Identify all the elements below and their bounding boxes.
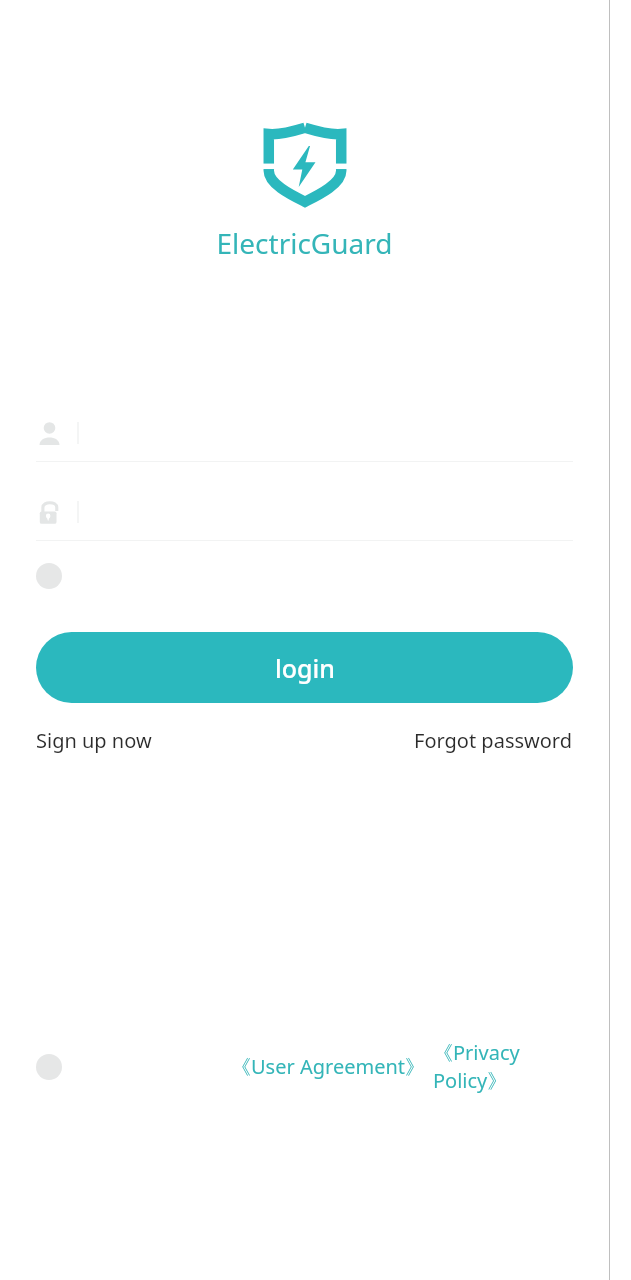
button[interactable]: Sign up now xyxy=(36,727,152,754)
staticText: login xyxy=(275,651,335,685)
staticText: Sign up now xyxy=(36,727,152,754)
button[interactable]: Remember me xyxy=(36,563,62,589)
button[interactable]: 《Privacy Policy》 xyxy=(433,1039,587,1094)
staticText: ElectricGuard xyxy=(0,224,609,262)
staticText: Forgot password xyxy=(414,727,573,754)
button[interactable]: 《User Agreement》 xyxy=(231,1053,425,1080)
staticText: 《Privacy Policy》 xyxy=(433,1039,587,1094)
button[interactable]: Forgot password xyxy=(414,727,573,754)
button[interactable]: login xyxy=(36,632,573,703)
button[interactable]: Agree to terms xyxy=(36,1054,62,1080)
staticText: 《User Agreement》 xyxy=(231,1053,425,1080)
